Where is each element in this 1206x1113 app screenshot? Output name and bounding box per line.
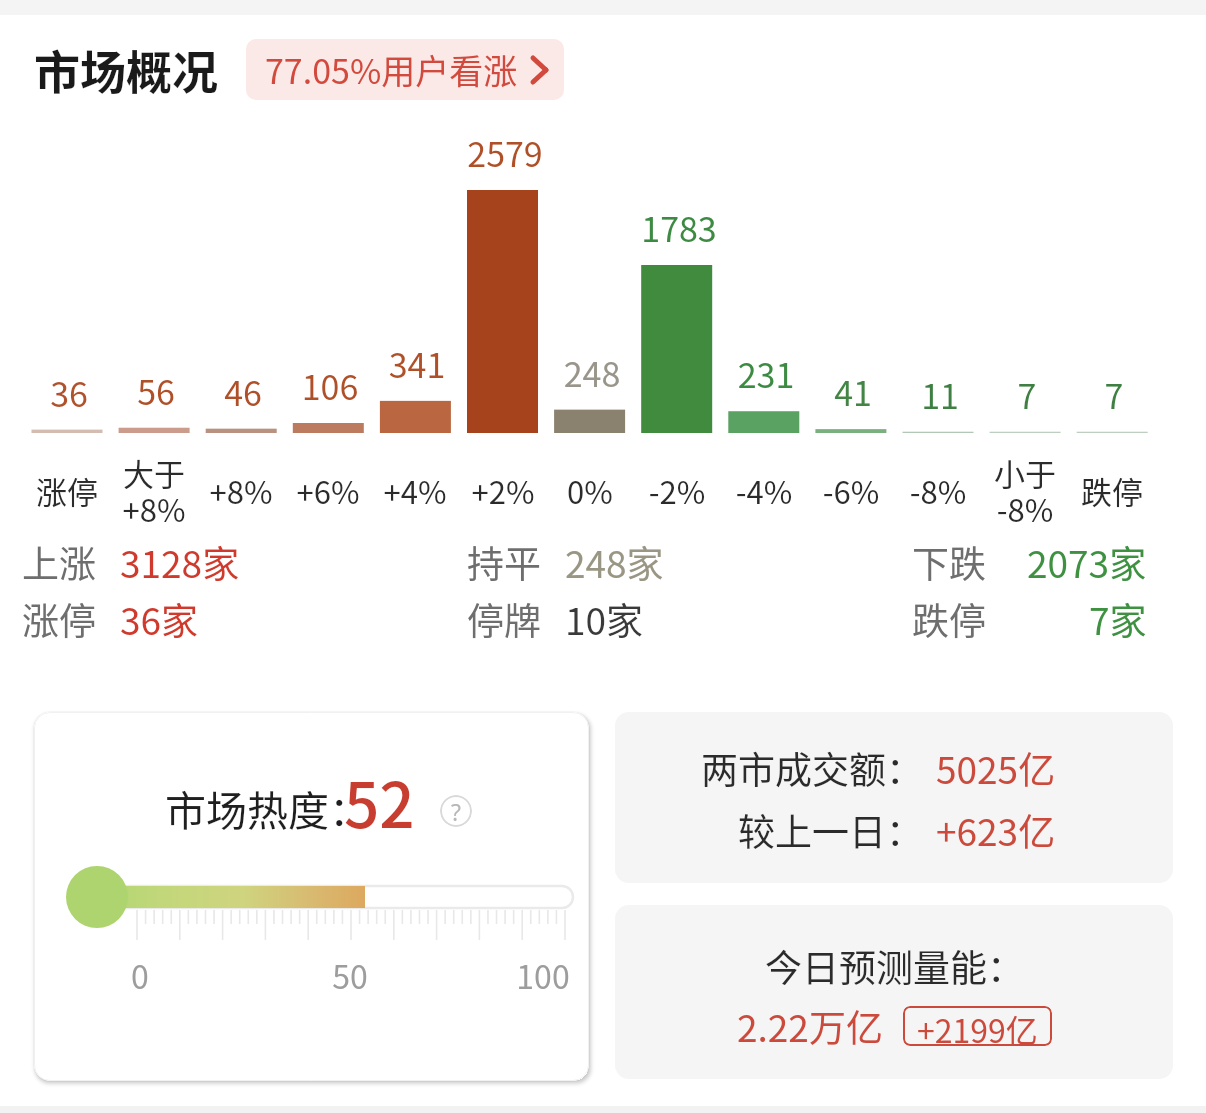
button[interactable]: 77.05%用户看涨: [246, 39, 564, 100]
staticText: ?: [451, 796, 461, 827]
staticText: 涨停: [22, 592, 96, 646]
button[interactable]: 两市成交额：: [615, 712, 1173, 883]
staticText: 36: [9, 368, 129, 417]
staticText: +4%: [355, 468, 475, 513]
staticText: 248家: [565, 535, 664, 589]
staticText: 248: [532, 348, 652, 397]
staticText: -4%: [704, 468, 824, 513]
staticText: 41: [793, 367, 913, 416]
staticText: 跌停: [1052, 468, 1172, 513]
staticText: -2%: [617, 468, 737, 513]
staticText: 两市成交额：: [701, 741, 923, 795]
staticText: 大于: [94, 450, 214, 495]
staticText: -6%: [791, 468, 911, 513]
staticText: +8%: [94, 486, 214, 531]
staticText: 231: [706, 349, 826, 398]
staticText: 下跌: [912, 535, 986, 589]
staticText: 7: [1054, 370, 1174, 419]
staticText: 2579: [445, 128, 565, 177]
button[interactable]: 涨跌分布图: [0, 120, 1160, 520]
staticText: 0: [80, 952, 200, 998]
staticText: 持平: [467, 535, 541, 589]
staticText: 涨停: [7, 468, 127, 513]
staticText: 2.22万亿: [737, 999, 883, 1053]
button[interactable]: 今日预测量能：: [615, 905, 1173, 1079]
staticText: +2%: [443, 468, 563, 513]
staticText: 市场热度：: [165, 778, 370, 837]
staticText: 今日预测量能：: [765, 939, 1024, 993]
staticText: 106: [270, 361, 390, 410]
staticText: +6%: [268, 468, 388, 513]
staticText: 上涨: [22, 535, 96, 589]
staticText: 50: [290, 952, 410, 998]
staticText: 7家: [1089, 592, 1147, 646]
staticText: 2073家: [1027, 535, 1147, 589]
staticText: 10家: [565, 592, 644, 646]
staticText: 11: [880, 370, 1000, 419]
staticText: 市场概况: [34, 36, 218, 103]
staticText: 7: [967, 370, 1087, 419]
staticText: 1783: [619, 203, 739, 252]
staticText: 5025亿: [936, 741, 1056, 795]
staticText: 0%: [530, 468, 650, 513]
staticText: 跌停: [912, 592, 986, 646]
staticText: +2199亿: [917, 1006, 1038, 1046]
staticText: +623亿: [936, 803, 1056, 857]
staticText: -8%: [965, 486, 1085, 531]
staticText: 100: [483, 952, 589, 998]
staticText: 77.05%用户看涨: [265, 45, 518, 94]
staticText: 较上一日：: [738, 803, 923, 857]
staticText: 36家: [120, 592, 199, 646]
staticText: +8%: [181, 468, 301, 513]
staticText: 56: [96, 366, 216, 415]
staticText: 停牌: [467, 592, 541, 646]
button[interactable]: Help: [440, 795, 472, 827]
staticText: 341: [357, 339, 477, 388]
staticText: 3128家: [120, 535, 240, 589]
staticText: -8%: [878, 468, 998, 513]
staticText: 小于: [965, 450, 1085, 495]
button[interactable]: 市场热度：: [34, 712, 589, 1081]
staticText: 46: [183, 367, 303, 416]
staticText: 52: [344, 756, 415, 846]
